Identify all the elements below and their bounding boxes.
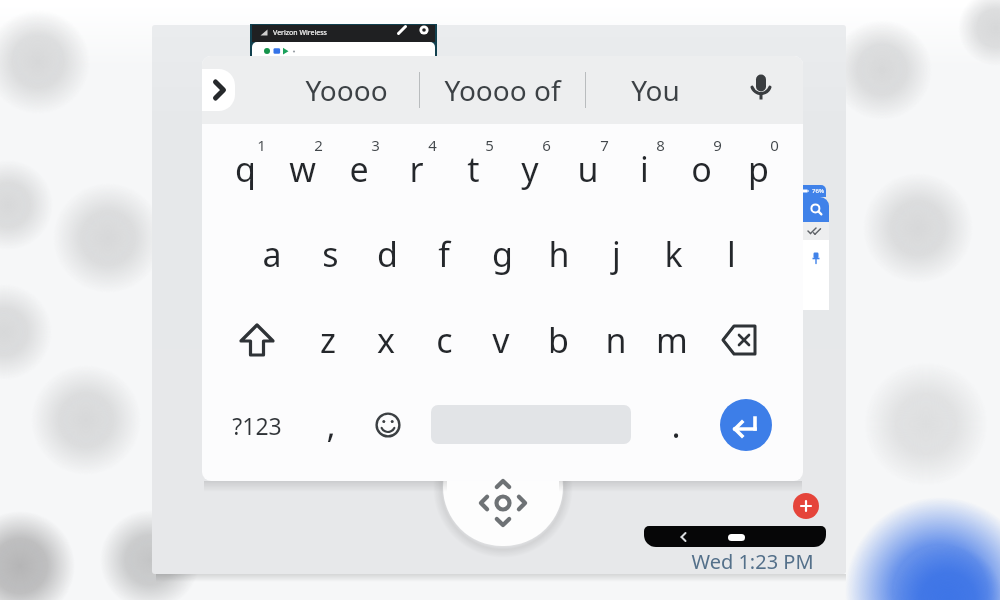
staticText: u <box>577 146 599 192</box>
button[interactable]: y <box>503 143 557 195</box>
button[interactable]: h <box>532 228 586 280</box>
button[interactable]: s <box>303 228 357 280</box>
button[interactable]: z <box>301 314 355 366</box>
button[interactable]: Yoooo of <box>427 60 577 120</box>
button[interactable]: r <box>389 143 443 195</box>
staticText: y <box>521 146 539 192</box>
button[interactable] <box>810 252 822 266</box>
button[interactable]: You <box>595 60 715 120</box>
staticText: 4 <box>428 135 437 155</box>
staticText: c <box>436 317 453 363</box>
staticText: 6 <box>542 135 551 155</box>
button[interactable]: u <box>561 143 615 195</box>
staticText: g <box>492 231 513 277</box>
staticText: v <box>492 317 510 363</box>
staticText: r <box>409 146 424 192</box>
button[interactable]: c <box>417 314 471 366</box>
staticText: Wed 1:23 PM <box>691 548 814 574</box>
staticText: b <box>548 317 569 363</box>
staticText: l <box>727 231 736 277</box>
staticText: Yoooo <box>305 71 388 109</box>
staticText: . <box>671 402 681 448</box>
staticText: s <box>322 231 339 277</box>
button[interactable] <box>374 411 402 439</box>
staticText: You <box>631 71 680 109</box>
button[interactable]: e <box>332 143 386 195</box>
staticText: , <box>326 402 336 448</box>
staticText: Verizon Wireless <box>273 28 327 38</box>
staticText: z <box>320 317 336 363</box>
staticText: j <box>612 231 621 277</box>
staticText: 8 <box>656 135 665 155</box>
button[interactable]: t <box>446 143 500 195</box>
staticText: o <box>691 146 712 192</box>
button[interactable] <box>473 473 533 533</box>
button[interactable]: p <box>731 143 785 195</box>
button[interactable]: Yoooo <box>266 60 426 120</box>
button[interactable] <box>396 24 408 36</box>
staticText: k <box>664 231 683 277</box>
staticText: 1 <box>257 135 266 155</box>
button[interactable]: g <box>475 228 529 280</box>
button[interactable]: a <box>245 228 299 280</box>
staticText: 2 <box>314 135 323 155</box>
staticText: a <box>262 231 282 277</box>
staticText: f <box>438 231 450 277</box>
button[interactable]: q <box>218 143 272 195</box>
button[interactable] <box>744 73 778 107</box>
staticText: w <box>289 146 316 192</box>
button[interactable]: b <box>531 314 585 366</box>
staticText: ?123 <box>232 410 282 441</box>
button[interactable] <box>678 531 690 543</box>
button[interactable] <box>803 222 829 240</box>
staticText: 0 <box>770 135 779 155</box>
button[interactable]: . <box>656 399 696 451</box>
staticText: 3 <box>371 135 380 155</box>
button[interactable] <box>728 534 745 541</box>
button[interactable] <box>202 69 235 111</box>
button[interactable] <box>803 197 829 222</box>
button[interactable] <box>237 321 277 361</box>
button[interactable]: v <box>474 314 528 366</box>
button[interactable]: ?123 <box>217 400 297 450</box>
staticText: i <box>640 146 649 192</box>
button[interactable] <box>793 493 819 519</box>
button[interactable]: d <box>360 228 414 280</box>
button[interactable]: l <box>704 228 758 280</box>
staticText: e <box>349 146 369 192</box>
staticText: h <box>548 231 570 277</box>
button[interactable]: w <box>275 143 329 195</box>
button[interactable]: o <box>674 143 728 195</box>
button[interactable]: k <box>646 228 700 280</box>
button[interactable]: f <box>417 228 471 280</box>
button[interactable] <box>720 399 772 451</box>
button[interactable]: , <box>311 399 351 451</box>
staticText: 9 <box>713 135 722 155</box>
staticText: 5 <box>485 135 494 155</box>
staticText: 76% <box>812 187 824 195</box>
staticText: 7 <box>600 135 609 155</box>
staticText: x <box>377 317 395 363</box>
staticText: m <box>656 317 688 363</box>
staticText: p <box>748 146 769 192</box>
staticText: Yoooo of <box>444 71 561 109</box>
staticText: n <box>605 317 627 363</box>
button[interactable]: i <box>617 143 671 195</box>
staticText: q <box>235 146 256 192</box>
button[interactable]: n <box>589 314 643 366</box>
button[interactable] <box>719 322 763 358</box>
staticText: d <box>377 231 398 277</box>
button[interactable]: m <box>645 314 699 366</box>
staticText: t <box>467 146 480 192</box>
button[interactable]: x <box>359 314 413 366</box>
button[interactable]: j <box>589 228 643 280</box>
button[interactable] <box>418 24 430 36</box>
